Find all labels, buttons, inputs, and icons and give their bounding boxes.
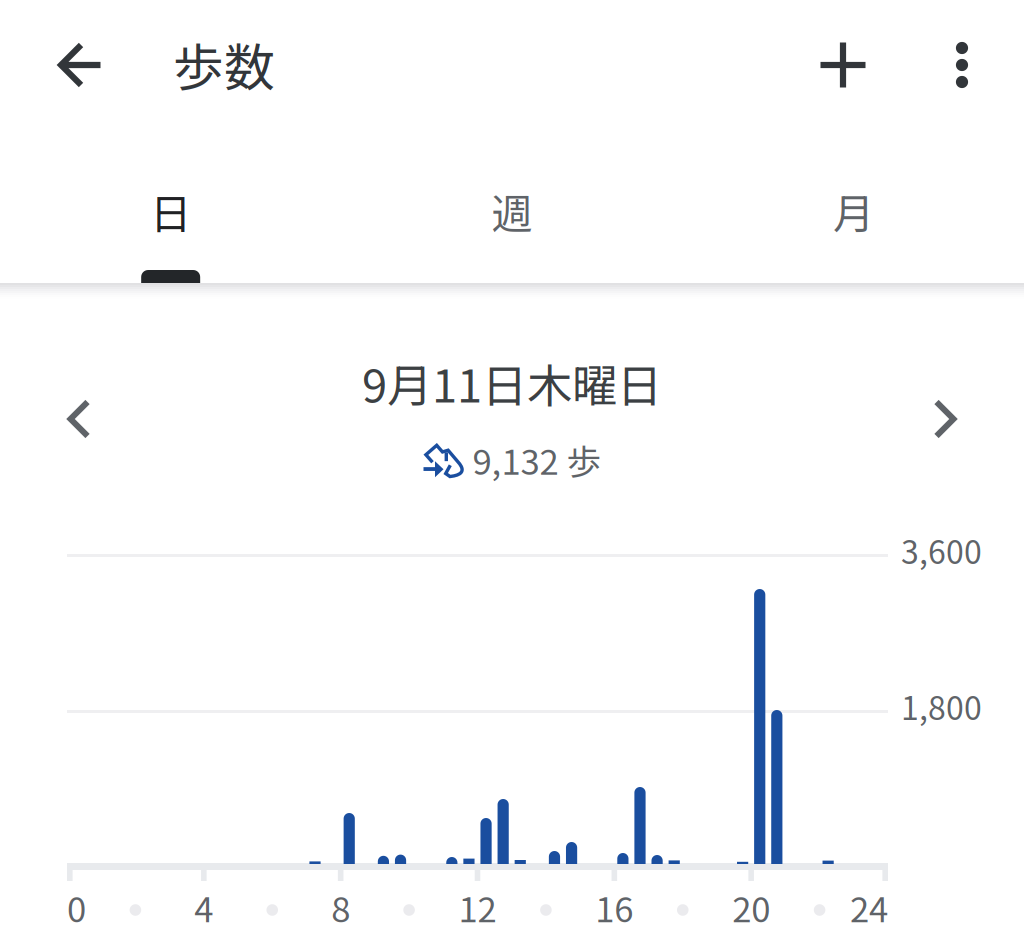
button[interactable]: 週	[341, 140, 683, 282]
staticText: 12	[458, 882, 496, 932]
button[interactable]: Previous day	[33, 373, 125, 465]
staticText: 8	[331, 882, 350, 932]
staticText: 9,132 歩	[472, 435, 601, 485]
staticText: 歩数	[173, 27, 275, 101]
staticText: 1,800	[901, 683, 982, 729]
staticText: 3,600	[901, 527, 982, 573]
button[interactable]: Add	[795, 17, 891, 113]
staticText: 日	[150, 181, 191, 241]
staticText: 9月11日木曜日	[362, 350, 662, 416]
staticText: 月	[833, 181, 874, 241]
staticText: 20	[732, 882, 770, 932]
staticText: 週	[491, 181, 532, 241]
button[interactable]: Next day	[899, 373, 991, 465]
button[interactable]: 月	[683, 140, 1024, 282]
staticText: 4	[194, 882, 213, 932]
button[interactable]: More options	[924, 17, 1000, 113]
button[interactable]: Back	[31, 17, 127, 113]
staticText: 0	[67, 882, 86, 932]
staticText: 24	[850, 882, 888, 932]
staticText: 16	[595, 882, 633, 932]
button[interactable]: 日	[0, 140, 341, 282]
